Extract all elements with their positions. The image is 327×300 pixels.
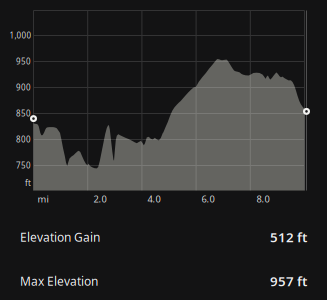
staticText: 950: [16, 56, 31, 67]
staticText: 8.0: [256, 193, 269, 205]
staticText: 512 ft: [270, 228, 307, 246]
staticText: 2.0: [93, 193, 106, 205]
staticText: Elevation Gain: [20, 229, 100, 245]
button[interactable]: Elevation Gain: [0, 215, 327, 259]
staticText: Max Elevation: [20, 273, 98, 289]
staticText: 750: [16, 160, 31, 171]
staticText: mi: [37, 193, 48, 205]
staticText: 6.0: [201, 193, 214, 205]
button[interactable]: Max Elevation: [0, 259, 327, 300]
staticText: 4.0: [147, 193, 160, 205]
staticText: 800: [16, 134, 31, 145]
staticText: ft: [25, 178, 31, 188]
staticText: 1,000: [9, 30, 31, 41]
staticText: 900: [16, 82, 31, 93]
staticText: 850: [16, 108, 31, 119]
staticText: 957 ft: [270, 272, 307, 290]
